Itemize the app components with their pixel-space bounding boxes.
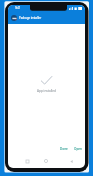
button[interactable]: Done	[58, 145, 70, 153]
staticText: Package installer	[19, 16, 42, 20]
staticText: Done	[60, 147, 68, 151]
staticText: 9:41	[15, 6, 21, 10]
button[interactable]: Recent apps	[23, 157, 31, 165]
button[interactable]: Home	[42, 157, 50, 165]
button[interactable]: App icon	[11, 15, 17, 21]
staticText: App installed	[37, 89, 56, 93]
staticText: Open	[74, 147, 83, 151]
button[interactable]: Open	[72, 145, 85, 153]
button[interactable]: Back	[67, 157, 75, 165]
